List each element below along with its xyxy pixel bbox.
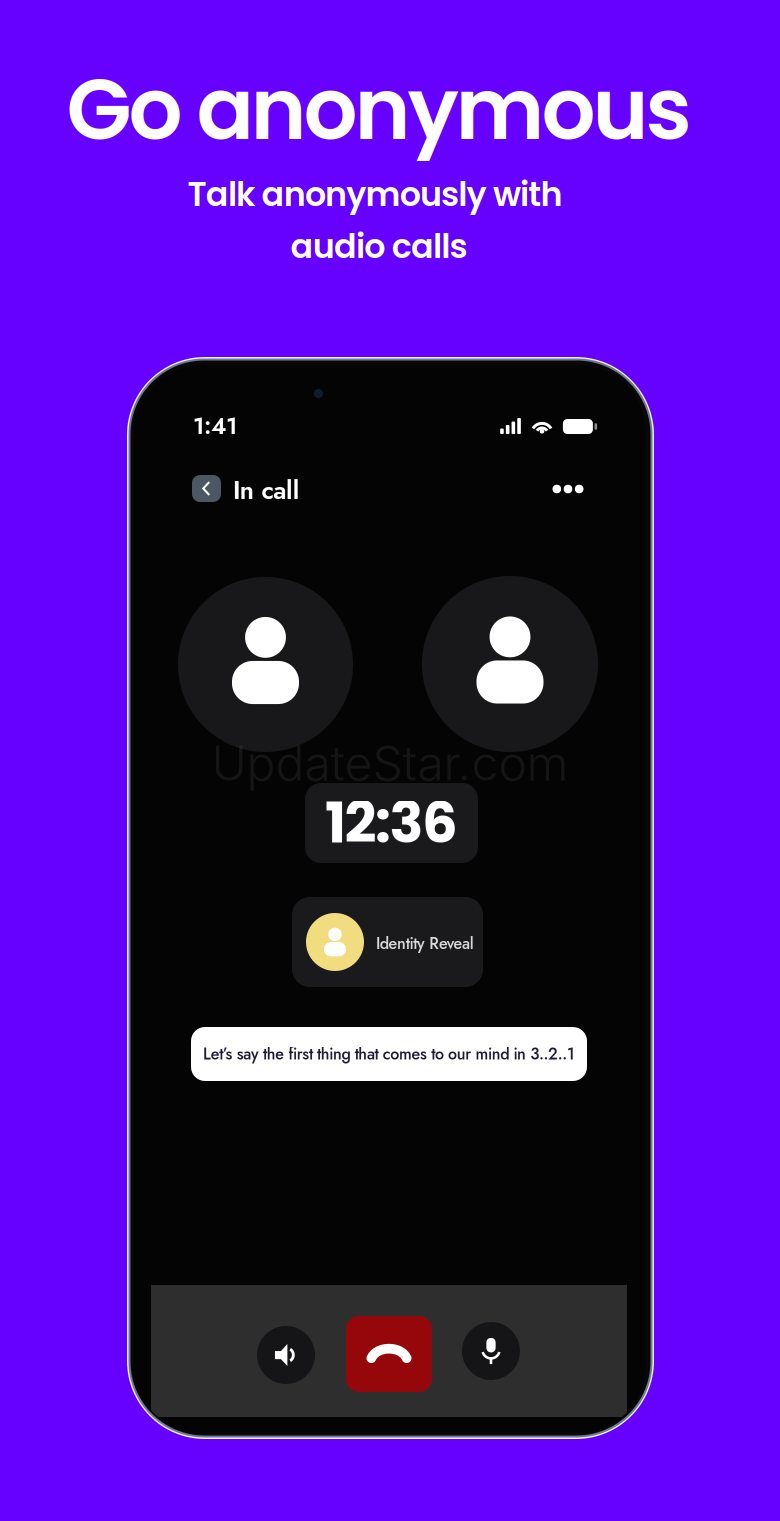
staticText: Identity Reveal bbox=[376, 932, 474, 955]
button[interactable]: More options bbox=[545, 472, 591, 506]
button[interactable]: Back bbox=[192, 475, 221, 502]
button[interactable]: End call bbox=[346, 1316, 432, 1392]
button[interactable]: Identity Reveal bbox=[292, 897, 483, 987]
staticText: UpdateStar.com bbox=[211, 734, 568, 792]
button[interactable]: Mute microphone bbox=[462, 1322, 520, 1380]
staticText: Let’s say the first thing that comes to … bbox=[203, 1042, 575, 1065]
staticText: 12:36 bbox=[325, 784, 458, 862]
button[interactable]: Speaker bbox=[257, 1326, 315, 1384]
staticText: 1:41 bbox=[193, 409, 237, 443]
staticText: audio calls bbox=[290, 223, 467, 270]
staticText: In call bbox=[233, 472, 300, 509]
staticText: Talk anonymously with bbox=[187, 171, 562, 218]
staticText: Go anonymous bbox=[66, 50, 691, 168]
